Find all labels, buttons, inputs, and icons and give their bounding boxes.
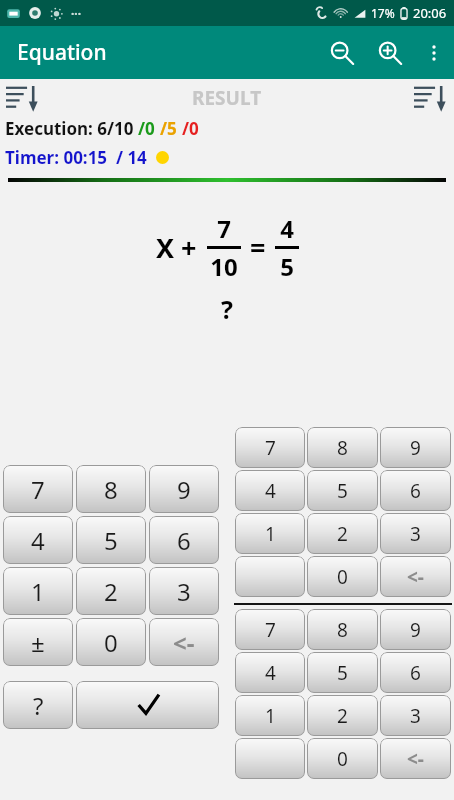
staticText: <-: [173, 626, 195, 659]
button[interactable]: Zoom out: [318, 29, 366, 77]
button[interactable]: 4: [235, 652, 305, 693]
staticText: /0: [182, 117, 199, 140]
button[interactable]: ±: [3, 618, 73, 666]
button[interactable]: 9: [149, 465, 219, 513]
button[interactable]: 6: [380, 470, 451, 511]
button[interactable]: [235, 738, 305, 779]
button[interactable]: ?: [3, 681, 73, 729]
button[interactable]: 4: [3, 516, 73, 564]
staticText: 3: [177, 575, 191, 608]
staticText: 1: [265, 521, 276, 547]
staticText: 17%: [371, 5, 395, 21]
staticText: 7: [31, 473, 45, 506]
button[interactable]: 0: [76, 618, 146, 666]
staticText: 1: [265, 703, 276, 729]
staticText: 0: [337, 746, 348, 772]
staticText: 2: [337, 703, 348, 729]
button[interactable]: 1: [3, 567, 73, 615]
staticText: Execution: 6/10: [5, 117, 138, 140]
staticText: ?: [221, 292, 233, 326]
staticText: 5: [337, 478, 348, 504]
button[interactable]: 6: [380, 652, 451, 693]
button[interactable]: [235, 556, 305, 597]
button[interactable]: More options: [414, 33, 454, 73]
staticText: <-: [407, 564, 424, 590]
staticText: 0: [337, 564, 348, 590]
staticText: /5: [160, 117, 182, 140]
button[interactable]: 6: [149, 516, 219, 564]
button[interactable]: 0: [307, 738, 378, 779]
staticText: 6: [410, 478, 421, 504]
staticText: 6: [177, 524, 191, 557]
button[interactable]: 5: [307, 652, 378, 693]
staticText: 7: [217, 212, 231, 245]
staticText: Equation: [17, 38, 107, 67]
button[interactable]: 8: [76, 465, 146, 513]
staticText: 2: [337, 521, 348, 547]
staticText: 5: [280, 250, 294, 283]
staticText: 1: [31, 575, 45, 608]
staticText: 8: [104, 473, 118, 506]
staticText: 6: [410, 660, 421, 686]
button[interactable]: 2: [307, 695, 378, 736]
button[interactable]: 9: [380, 427, 451, 468]
staticText: <-: [407, 746, 424, 772]
staticText: 8: [337, 617, 348, 643]
staticText: Timer: 00:15 / 14: [5, 146, 156, 169]
staticText: 4: [31, 524, 45, 557]
staticText: 10: [210, 250, 238, 283]
button[interactable]: Sort right: [414, 83, 448, 113]
staticText: 9: [177, 473, 191, 506]
button[interactable]: <-: [149, 618, 219, 666]
staticText: 2: [104, 575, 118, 608]
staticText: 7: [265, 617, 276, 643]
button[interactable]: 2: [76, 567, 146, 615]
button[interactable]: 2: [307, 513, 378, 554]
button[interactable]: 3: [380, 695, 451, 736]
button[interactable]: 4: [235, 470, 305, 511]
button[interactable]: 8: [307, 427, 378, 468]
staticText: 4: [265, 660, 276, 686]
staticText: 8: [337, 435, 348, 461]
button[interactable]: 3: [380, 513, 451, 554]
staticText: 3: [410, 521, 421, 547]
staticText: 7: [265, 435, 276, 461]
staticText: 4: [280, 212, 294, 245]
button[interactable]: 7: [3, 465, 73, 513]
button[interactable]: Confirm: [76, 681, 219, 729]
button[interactable]: 7: [235, 609, 305, 650]
button[interactable]: <-: [380, 738, 451, 779]
staticText: 9: [410, 617, 421, 643]
staticText: 5: [104, 524, 118, 557]
button[interactable]: <-: [380, 556, 451, 597]
button[interactable]: 3: [149, 567, 219, 615]
button[interactable]: 1: [235, 513, 305, 554]
button[interactable]: 1: [235, 695, 305, 736]
staticText: RESULT: [192, 85, 262, 111]
staticText: ···: [71, 5, 82, 21]
staticText: ±: [31, 626, 45, 659]
staticText: 5: [337, 660, 348, 686]
button[interactable]: 5: [76, 516, 146, 564]
button[interactable]: Sort left: [6, 83, 40, 113]
button[interactable]: 5: [307, 470, 378, 511]
button[interactable]: 0: [307, 556, 378, 597]
button[interactable]: Zoom in: [366, 29, 414, 77]
staticText: 4: [265, 478, 276, 504]
staticText: 3: [410, 703, 421, 729]
button[interactable]: 7: [235, 427, 305, 468]
staticText: ?: [33, 689, 44, 722]
button[interactable]: 9: [380, 609, 451, 650]
button[interactable]: 8: [307, 609, 378, 650]
staticText: /0: [138, 117, 160, 140]
staticText: 20:06: [413, 4, 447, 22]
staticText: =: [250, 229, 266, 266]
staticText: 9: [410, 435, 421, 461]
staticText: X +: [156, 229, 197, 266]
staticText: 0: [104, 626, 118, 659]
